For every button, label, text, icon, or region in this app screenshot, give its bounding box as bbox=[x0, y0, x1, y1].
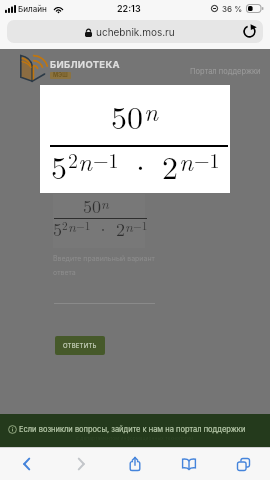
button[interactable]: Tabs bbox=[216, 448, 270, 480]
staticText: Введите правильный вариант bbox=[53, 254, 155, 262]
staticText: 50 bbox=[83, 194, 101, 219]
staticText: Если возникли вопросы, зайдите к нам на … bbox=[19, 425, 246, 434]
button[interactable]: Forward bbox=[54, 448, 108, 480]
staticText: 22:13 bbox=[117, 3, 141, 14]
staticText: n bbox=[78, 143, 93, 178]
button[interactable]: Если возникли вопросы, зайдите к нам на … bbox=[0, 414, 270, 448]
staticText: −1 bbox=[133, 217, 147, 233]
staticText: n bbox=[125, 216, 133, 236]
staticText: 50 bbox=[111, 93, 144, 138]
button[interactable]: ОТВЕТИТЬ bbox=[55, 336, 105, 355]
staticText: −1 bbox=[93, 145, 119, 173]
button[interactable]: Bookmarks bbox=[162, 448, 216, 480]
staticText: n bbox=[179, 143, 194, 178]
staticText: 5 bbox=[51, 143, 68, 188]
staticText: n bbox=[144, 93, 159, 128]
staticText: 2 bbox=[162, 143, 179, 188]
staticText: ОТВЕТИТЬ bbox=[63, 342, 97, 349]
button[interactable]: Reload page bbox=[242, 24, 257, 39]
staticText: −1 bbox=[76, 217, 91, 233]
staticText: n bbox=[68, 216, 76, 236]
staticText: 5 bbox=[53, 216, 62, 242]
button[interactable]: Share bbox=[108, 448, 162, 480]
staticText: БИБЛИОТЕКА bbox=[50, 59, 120, 70]
staticText: · bbox=[96, 216, 111, 242]
button[interactable]: Портал поддержки bbox=[190, 67, 261, 76]
staticText: n bbox=[101, 194, 109, 213]
staticText: · bbox=[128, 143, 153, 188]
button[interactable]: uchebnik.mos.ru bbox=[7, 20, 263, 43]
staticText: −1 bbox=[194, 145, 220, 173]
staticText: uchebnik.mos.ru bbox=[96, 26, 175, 38]
button[interactable]: Back bbox=[0, 448, 54, 480]
staticText: Билайн bbox=[18, 4, 47, 14]
staticText: ответа bbox=[53, 268, 76, 276]
staticText: 2 bbox=[68, 145, 78, 173]
staticText: МЭШ bbox=[53, 72, 68, 79]
staticText: 36 % bbox=[222, 4, 243, 14]
staticText: 2 bbox=[116, 216, 125, 242]
staticText: 2 bbox=[62, 217, 68, 233]
